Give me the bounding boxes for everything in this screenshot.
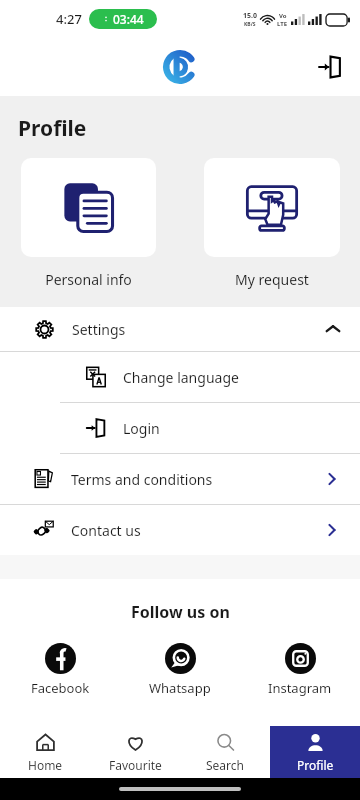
- button[interactable]: Instagram: [240, 643, 360, 697]
- button[interactable]: My request: [204, 158, 340, 289]
- button[interactable]: Change language: [0, 352, 360, 402]
- button[interactable]: Personal info: [21, 158, 156, 289]
- staticText: Favourite: [109, 757, 162, 773]
- staticText: Change language: [123, 368, 239, 387]
- staticText: Profile: [297, 757, 334, 773]
- staticText: Terms and conditions: [71, 470, 213, 489]
- staticText: My request: [235, 270, 309, 289]
- staticText: Settings: [72, 320, 126, 339]
- staticText: Contact us: [71, 521, 141, 540]
- button[interactable]: Whatsapp: [120, 643, 240, 697]
- staticText: Home: [28, 757, 63, 773]
- button[interactable]: Profile: [270, 726, 360, 778]
- staticText: LTE: [277, 20, 288, 28]
- staticText: KB/S: [244, 21, 256, 28]
- button[interactable]: Facebook: [0, 643, 120, 697]
- staticText: Vo: [279, 12, 287, 20]
- staticText: Profile: [18, 114, 87, 143]
- button[interactable]: Login: [0, 403, 360, 453]
- staticText: 4:27: [56, 10, 82, 28]
- staticText: 15.0: [243, 11, 257, 21]
- button[interactable]: Search: [180, 726, 270, 778]
- button[interactable]: Logout: [308, 45, 352, 89]
- button[interactable]: Contact us: [0, 505, 360, 555]
- button[interactable]: Home: [0, 726, 90, 778]
- staticText: Search: [206, 757, 244, 773]
- staticText: Personal info: [45, 270, 132, 289]
- staticText: Whatsapp: [149, 679, 211, 697]
- button[interactable]: Favourite: [90, 726, 180, 778]
- button[interactable]: Terms and conditions: [0, 454, 360, 504]
- staticText: 03:44: [113, 11, 144, 27]
- button[interactable]: Settings: [0, 307, 360, 351]
- staticText: Login: [123, 419, 160, 438]
- staticText: Instagram: [268, 679, 332, 697]
- staticText: Facebook: [31, 679, 90, 697]
- staticText: Follow us on: [131, 601, 230, 623]
